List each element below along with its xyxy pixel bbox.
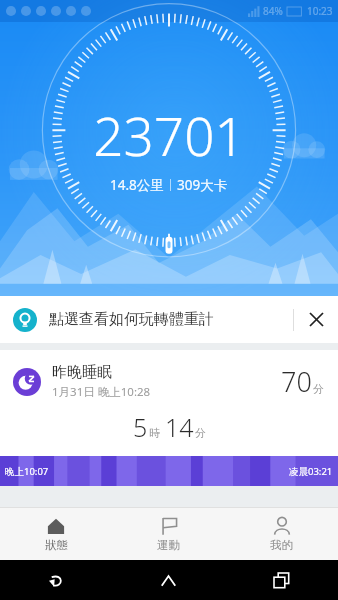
staticText: 5 bbox=[133, 410, 148, 444]
staticText: 14 bbox=[165, 410, 194, 444]
staticText: 凌晨03:21 bbox=[289, 465, 333, 478]
staticText: 分 bbox=[195, 426, 206, 440]
staticText: 1月31日 晚上10:28 bbox=[52, 384, 151, 400]
staticText: 14.8公里 bbox=[110, 176, 164, 194]
staticText: 時 bbox=[149, 426, 160, 440]
staticText: 23701 bbox=[93, 99, 245, 171]
button[interactable]: 運動 bbox=[112, 508, 225, 560]
button[interactable]: 點選查看如何玩轉體重計 bbox=[0, 296, 338, 343]
button[interactable]: 我的 bbox=[225, 508, 338, 560]
staticText: 84% bbox=[263, 4, 283, 18]
button[interactable]: Home bbox=[152, 564, 185, 597]
button[interactable]: 晚上10:07 bbox=[0, 456, 338, 486]
staticText: 10:23 bbox=[307, 4, 333, 18]
button[interactable]: 昨晚睡眠 bbox=[0, 350, 338, 456]
staticText: 我的 bbox=[270, 538, 293, 552]
button[interactable]: Recents bbox=[265, 564, 298, 597]
staticText: 狀態 bbox=[45, 538, 68, 552]
button[interactable]: 狀態 bbox=[0, 508, 112, 560]
staticText: 點選查看如何玩轉體重計 bbox=[49, 310, 293, 329]
staticText: 分 bbox=[313, 382, 324, 396]
staticText: 晚上10:07 bbox=[5, 465, 49, 478]
staticText: 運動 bbox=[157, 538, 180, 552]
staticText: 309大卡 bbox=[177, 176, 228, 194]
button[interactable]: Back bbox=[40, 564, 73, 597]
button[interactable]: Close bbox=[294, 296, 338, 343]
staticText: 70 bbox=[281, 363, 312, 400]
staticText: 昨晚睡眠 bbox=[52, 363, 112, 382]
